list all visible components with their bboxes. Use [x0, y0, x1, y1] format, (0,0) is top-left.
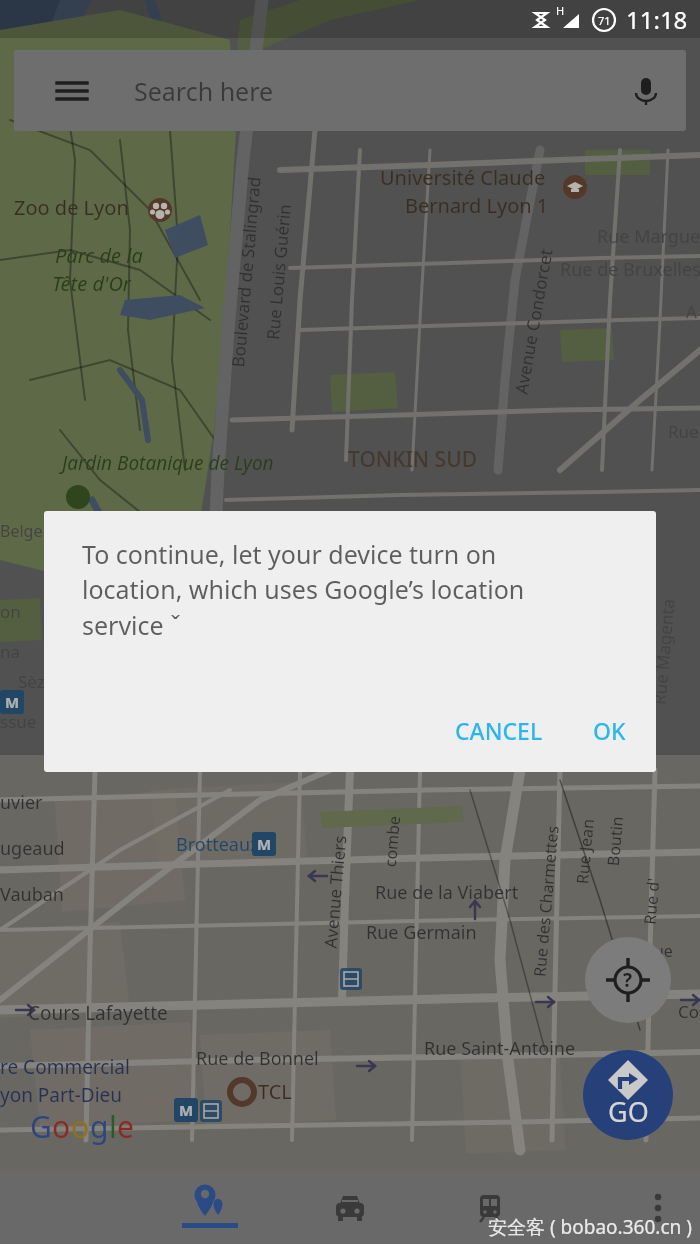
staticText: Rue d'	[638, 877, 664, 925]
button[interactable]: Menu	[14, 50, 686, 131]
staticText: Rue Saint-Antoine	[424, 1036, 576, 1061]
staticText: 71	[598, 13, 611, 28]
staticText: Rue Magenta	[647, 597, 680, 706]
staticText: Belge	[0, 520, 43, 542]
staticText: G	[30, 1106, 52, 1147]
staticText: M	[257, 834, 272, 854]
staticText: uvier	[0, 790, 43, 815]
staticText: combe	[379, 814, 405, 868]
staticText: yon Part-Dieu	[0, 1082, 123, 1108]
staticText: Rue	[668, 420, 699, 443]
staticText: Jardin Botanique de Lyon	[62, 450, 274, 476]
staticText: M	[5, 692, 20, 712]
staticText: Rue Germain	[366, 920, 477, 945]
staticText: Université Claude	[380, 164, 546, 191]
staticText: Search here	[134, 74, 274, 108]
staticText: Zoo de Lyon	[14, 194, 129, 221]
staticText: 11:18	[626, 3, 688, 36]
button[interactable]: Driving	[290, 1172, 410, 1244]
staticText: GO	[608, 1093, 649, 1130]
staticText: re Commercial	[0, 1054, 130, 1080]
staticText: o	[71, 1106, 90, 1147]
staticText: ?	[623, 967, 633, 993]
staticText: CANCEL	[455, 715, 543, 746]
staticText: Cours Lafayette	[28, 1000, 168, 1026]
button[interactable]: Menu	[44, 50, 100, 131]
staticText: Rue	[644, 940, 673, 962]
staticText: 安全客 ( bobao.360.cn )	[488, 1214, 692, 1240]
staticText: OK	[593, 715, 626, 746]
staticText: l	[109, 1106, 117, 1147]
staticText: Rue de Bonnel	[196, 1046, 319, 1071]
staticText: Avenue Thiers	[319, 834, 351, 949]
staticText: Rue des Charmettes	[528, 824, 564, 978]
staticText: Rue de Bruxelles	[560, 257, 700, 282]
staticText: Parc de la	[55, 242, 143, 269]
staticText: Rue Jean	[571, 817, 599, 885]
button[interactable]: CANCEL	[441, 705, 557, 756]
staticText: TCL	[258, 1078, 292, 1105]
staticText: Cou	[678, 1000, 700, 1023]
staticText: Boutin	[602, 815, 628, 867]
staticText: TONKIN SUD	[348, 445, 478, 474]
button[interactable]: My location	[585, 937, 671, 1023]
staticText: na	[0, 640, 21, 663]
staticText: Avenue Condorcet	[509, 247, 558, 396]
staticText: ssue	[0, 710, 37, 733]
staticText: Tête d'Or	[52, 270, 131, 297]
staticText: Rue Margue	[597, 224, 700, 249]
staticText: o	[52, 1106, 71, 1147]
staticText: A	[686, 300, 697, 323]
button[interactable]: Explore	[140, 1172, 280, 1244]
staticText: Brotteaux	[176, 832, 260, 857]
staticText: H	[556, 3, 565, 18]
staticText: g	[90, 1106, 109, 1147]
staticText: Bernard Lyon 1	[405, 192, 549, 219]
staticText: e	[117, 1106, 134, 1147]
staticText: Rue Louis Guérin	[261, 202, 296, 341]
staticText: ugeaud	[0, 836, 65, 861]
button[interactable]: Start navigation, GO	[583, 1050, 673, 1140]
staticText: To continue, let your device turn on loc…	[82, 537, 582, 643]
staticText: M	[179, 1100, 194, 1120]
button[interactable]: Voice search	[620, 65, 672, 117]
staticText: Boulevard de Stalingrad	[226, 175, 266, 368]
staticText: Rue de la Viabert	[375, 880, 519, 905]
button[interactable]: OK	[579, 705, 640, 756]
button[interactable]: More options	[622, 1172, 694, 1244]
staticText: on	[0, 600, 21, 623]
staticText: Sèze	[18, 670, 55, 693]
staticText: Vauban	[0, 882, 64, 907]
button[interactable]: Transit	[430, 1172, 550, 1244]
